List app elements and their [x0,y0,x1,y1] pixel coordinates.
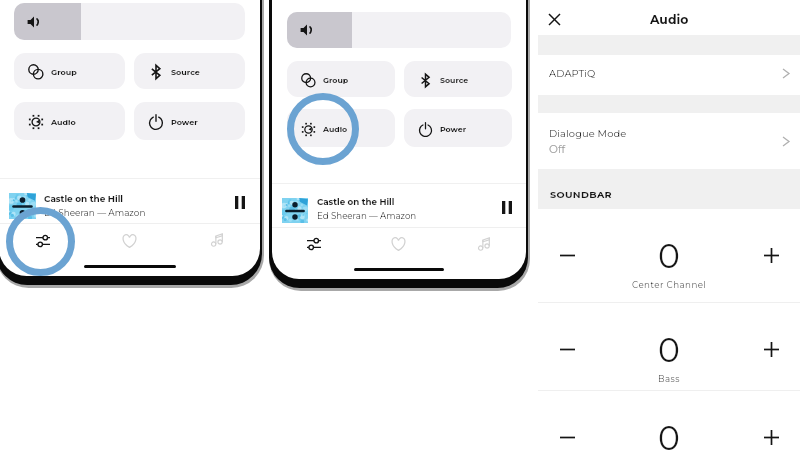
button[interactable]: Power [134,102,245,140]
button[interactable]: Source [134,53,245,89]
staticText: 0 [658,418,680,458]
staticText: SOUNDBAR [550,189,612,201]
staticText: 0 [658,330,680,370]
button[interactable]: Increase Bass [756,335,786,363]
staticText: Power [440,124,467,134]
button[interactable]: Decrease Bass [552,335,582,363]
button[interactable]: Dialogue Mode [538,113,800,169]
button[interactable]: Music [441,228,526,260]
button[interactable]: Audio [287,109,395,147]
button[interactable]: Increase Center Channel [756,241,786,269]
staticText: Audio [650,12,689,27]
staticText: Audio [51,117,76,127]
button[interactable]: Source [404,61,512,97]
staticText: Source [171,67,200,77]
button[interactable]: Group [14,53,125,89]
staticText: Ed Sheeran — Amazon [317,211,417,222]
button[interactable]: Favorites [356,228,441,260]
button[interactable]: ADAPTiQ [538,53,800,93]
button[interactable]: Controls [272,228,356,260]
staticText: Source [440,75,469,85]
button[interactable]: Favorites [86,224,173,257]
staticText: Off [549,143,566,156]
button[interactable]: Pause [235,196,245,209]
button[interactable]: Music [173,224,260,257]
staticText: Group [51,67,77,77]
staticText: Audio [323,124,348,134]
button[interactable]: Power [404,109,512,147]
button[interactable]: Group [287,61,395,97]
button[interactable]: Close [540,5,568,33]
staticText: Power [171,117,198,127]
staticText: Bass [658,374,680,385]
staticText: Dialogue Mode [549,127,627,139]
button[interactable] [14,3,245,40]
button[interactable]: Pause [502,201,512,214]
button[interactable]: Decrease Center Channel [552,241,582,269]
staticText: ADAPTiQ [549,67,596,79]
button[interactable] [287,12,511,48]
staticText: Ed Sheeran — Amazon [44,207,146,218]
staticText: Castle on the Hill [317,197,395,208]
staticText: Castle on the Hill [44,193,124,204]
staticText: Group [323,75,349,85]
button[interactable]: Increase Treble [756,423,786,451]
button[interactable]: Controls [0,224,86,257]
button[interactable]: Decrease Treble [552,423,582,451]
staticText: Center Channel [632,280,707,291]
button[interactable]: Audio [14,102,125,140]
staticText: 0 [658,236,680,276]
